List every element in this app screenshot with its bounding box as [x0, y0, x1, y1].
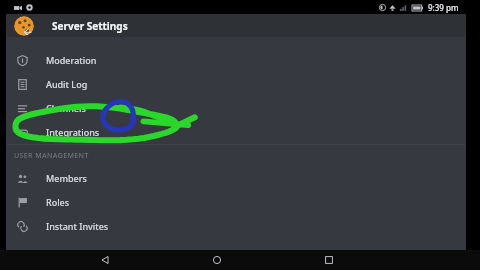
- staticText: Channels: [46, 102, 86, 114]
- button[interactable]: Roles: [6, 190, 466, 214]
- button[interactable]: Home: [206, 250, 228, 270]
- button[interactable]: Moderation: [6, 48, 466, 72]
- button[interactable]: Members: [6, 166, 466, 190]
- button[interactable]: Instant Invites: [6, 214, 466, 238]
- staticText: USER MANAGEMENT: [14, 151, 89, 161]
- staticText: Audit Log: [46, 78, 88, 90]
- button[interactable]: Audit Log: [6, 72, 466, 96]
- staticText: Instant Invites: [46, 220, 109, 232]
- button[interactable]: Back: [14, 16, 34, 36]
- button[interactable]: Recents: [318, 250, 340, 270]
- staticText: Integrations: [46, 126, 100, 138]
- staticText: Server Settings: [52, 19, 128, 33]
- staticText: Moderation: [46, 54, 97, 66]
- button[interactable]: Channels: [6, 96, 466, 120]
- button[interactable]: Back: [94, 250, 116, 270]
- button[interactable]: Integrations: [6, 120, 466, 144]
- staticText: Members: [46, 172, 87, 184]
- staticText: 9:39 pm: [428, 2, 459, 13]
- staticText: Roles: [46, 196, 70, 208]
